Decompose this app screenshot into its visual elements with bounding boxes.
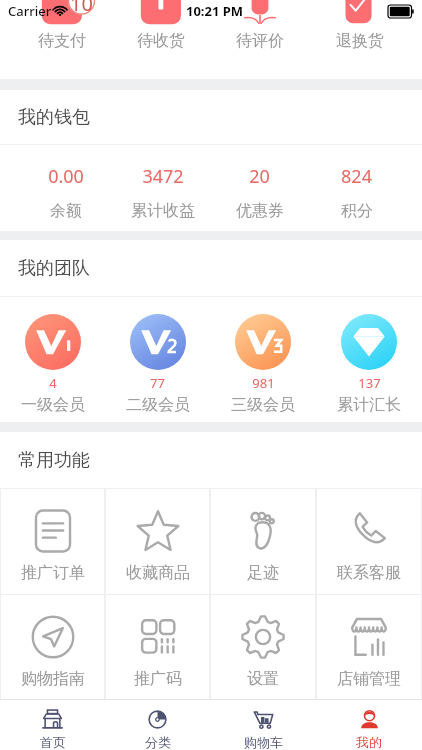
button[interactable]: 4 (0, 297, 105, 422)
staticText: 累计汇长 (337, 395, 401, 415)
button[interactable]: 联系客服 (316, 489, 422, 594)
staticText: 77 (150, 374, 165, 392)
button[interactable]: 824 (308, 145, 405, 231)
staticText: 4 (49, 374, 57, 392)
staticText: 首页 (40, 734, 66, 750)
button[interactable]: 购物指南 (0, 595, 105, 699)
button[interactable]: 推广订单 (0, 489, 105, 594)
staticText: 824 (341, 164, 372, 189)
staticText: 一级会员 (21, 395, 85, 415)
button[interactable]: 分类 (105, 700, 210, 750)
button[interactable]: 收藏商品 (105, 489, 210, 594)
button[interactable]: 20 (211, 145, 308, 231)
button[interactable]: 我的 (316, 700, 422, 750)
staticText: 余额 (50, 201, 82, 221)
button[interactable]: 0.00 (17, 145, 114, 231)
button[interactable]: 首页 (0, 700, 105, 750)
staticText: 购物指南 (21, 669, 85, 689)
staticText: 店铺管理 (337, 669, 401, 689)
staticText: 常用功能 (18, 449, 90, 472)
button[interactable]: 待收货 (111, 0, 210, 79)
staticText: 我的团队 (18, 257, 90, 280)
staticText: 981 (252, 374, 275, 392)
staticText: Carrier (8, 2, 52, 20)
staticText: 购物车 (244, 734, 283, 750)
button[interactable]: 购物车 (210, 700, 316, 750)
button[interactable]: 足迹 (210, 489, 316, 594)
button[interactable]: 3472 (114, 145, 211, 231)
staticText: 推广码 (134, 669, 182, 689)
button[interactable]: 137 (316, 297, 422, 422)
staticText: 优惠券 (236, 201, 284, 221)
staticText: 10:21 PM (186, 2, 244, 20)
staticText: 我的 (356, 734, 382, 750)
staticText: 累计收益 (131, 201, 195, 221)
staticText: 待支付 (38, 31, 86, 51)
staticText: 收藏商品 (126, 563, 190, 583)
staticText: 3472 (142, 164, 184, 189)
staticText: 积分 (341, 201, 373, 221)
staticText: 三级会员 (231, 395, 295, 415)
staticText: 我的钱包 (18, 106, 90, 129)
button[interactable]: 设置 (210, 595, 316, 699)
staticText: 推广订单 (21, 563, 85, 583)
staticText: 10 (70, 0, 93, 12)
button[interactable]: 77 (105, 297, 210, 422)
button[interactable]: 981 (210, 297, 316, 422)
staticText: 设置 (247, 669, 279, 689)
staticText: 待评价 (236, 31, 284, 51)
staticText: 二级会员 (126, 395, 190, 415)
staticText: 137 (358, 374, 381, 392)
button[interactable]: 推广码 (105, 595, 210, 699)
button[interactable]: 待评价 (210, 0, 310, 79)
staticText: 退换货 (336, 31, 384, 51)
staticText: 分类 (145, 734, 171, 750)
staticText: 0.00 (48, 164, 84, 189)
button[interactable]: 店铺管理 (316, 595, 422, 699)
staticText: 20 (249, 164, 270, 189)
staticText: 待收货 (137, 31, 185, 51)
button[interactable]: 退换货 (310, 0, 410, 79)
button[interactable]: 待支付 (12, 0, 111, 79)
staticText: 足迹 (247, 563, 279, 583)
staticText: 联系客服 (337, 563, 401, 583)
